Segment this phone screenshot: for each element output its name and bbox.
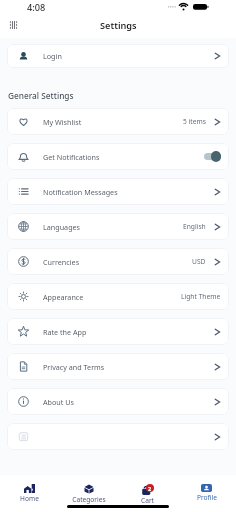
staticText: 4:08 — [27, 1, 46, 14]
staticText: About Us — [43, 397, 74, 407]
button[interactable]: Notification Messages — [7, 178, 229, 205]
staticText: Categories — [72, 495, 106, 504]
button[interactable]: Toggle notifications — [204, 151, 221, 162]
staticText: Rate the App — [43, 327, 87, 337]
button[interactable]: Currencies — [7, 248, 229, 275]
staticText: USD — [192, 257, 206, 266]
staticText: Cart — [141, 496, 154, 504]
staticText: Settings — [100, 19, 137, 32]
button[interactable]: Profile — [177, 484, 236, 502]
button[interactable]: Home — [0, 484, 59, 503]
staticText: Privacy and Terms — [43, 362, 105, 372]
button[interactable]: Login — [7, 44, 229, 68]
staticText: English — [183, 222, 206, 231]
button[interactable]: Get Notifications — [7, 143, 229, 170]
staticText: General Settings — [8, 90, 74, 101]
button[interactable] — [7, 423, 229, 450]
button[interactable]: Appearance — [7, 283, 229, 310]
button[interactable]: About Us — [7, 388, 229, 415]
staticText: My Wishlist — [43, 117, 82, 127]
button[interactable]: Rate the App — [7, 318, 229, 345]
button[interactable]: Menu — [6, 18, 20, 32]
staticText: 5 items — [183, 117, 206, 126]
button[interactable]: Categories — [59, 484, 118, 504]
staticText: Profile — [197, 493, 217, 502]
staticText: Light Theme — [181, 292, 221, 301]
staticText: Login — [43, 51, 62, 61]
staticText: Notification Messages — [43, 187, 118, 197]
staticText: Appearance — [43, 292, 84, 302]
button[interactable]: Languages — [7, 213, 229, 240]
button[interactable]: Privacy and Terms — [7, 353, 229, 380]
button[interactable]: My Wishlist — [7, 108, 229, 135]
staticText: Currencies — [43, 257, 80, 267]
staticText: Home — [20, 494, 39, 503]
button[interactable]: 2 — [118, 484, 177, 504]
staticText: 2 — [148, 485, 152, 492]
staticText: Get Notifications — [43, 152, 100, 162]
staticText: Languages — [43, 222, 81, 232]
